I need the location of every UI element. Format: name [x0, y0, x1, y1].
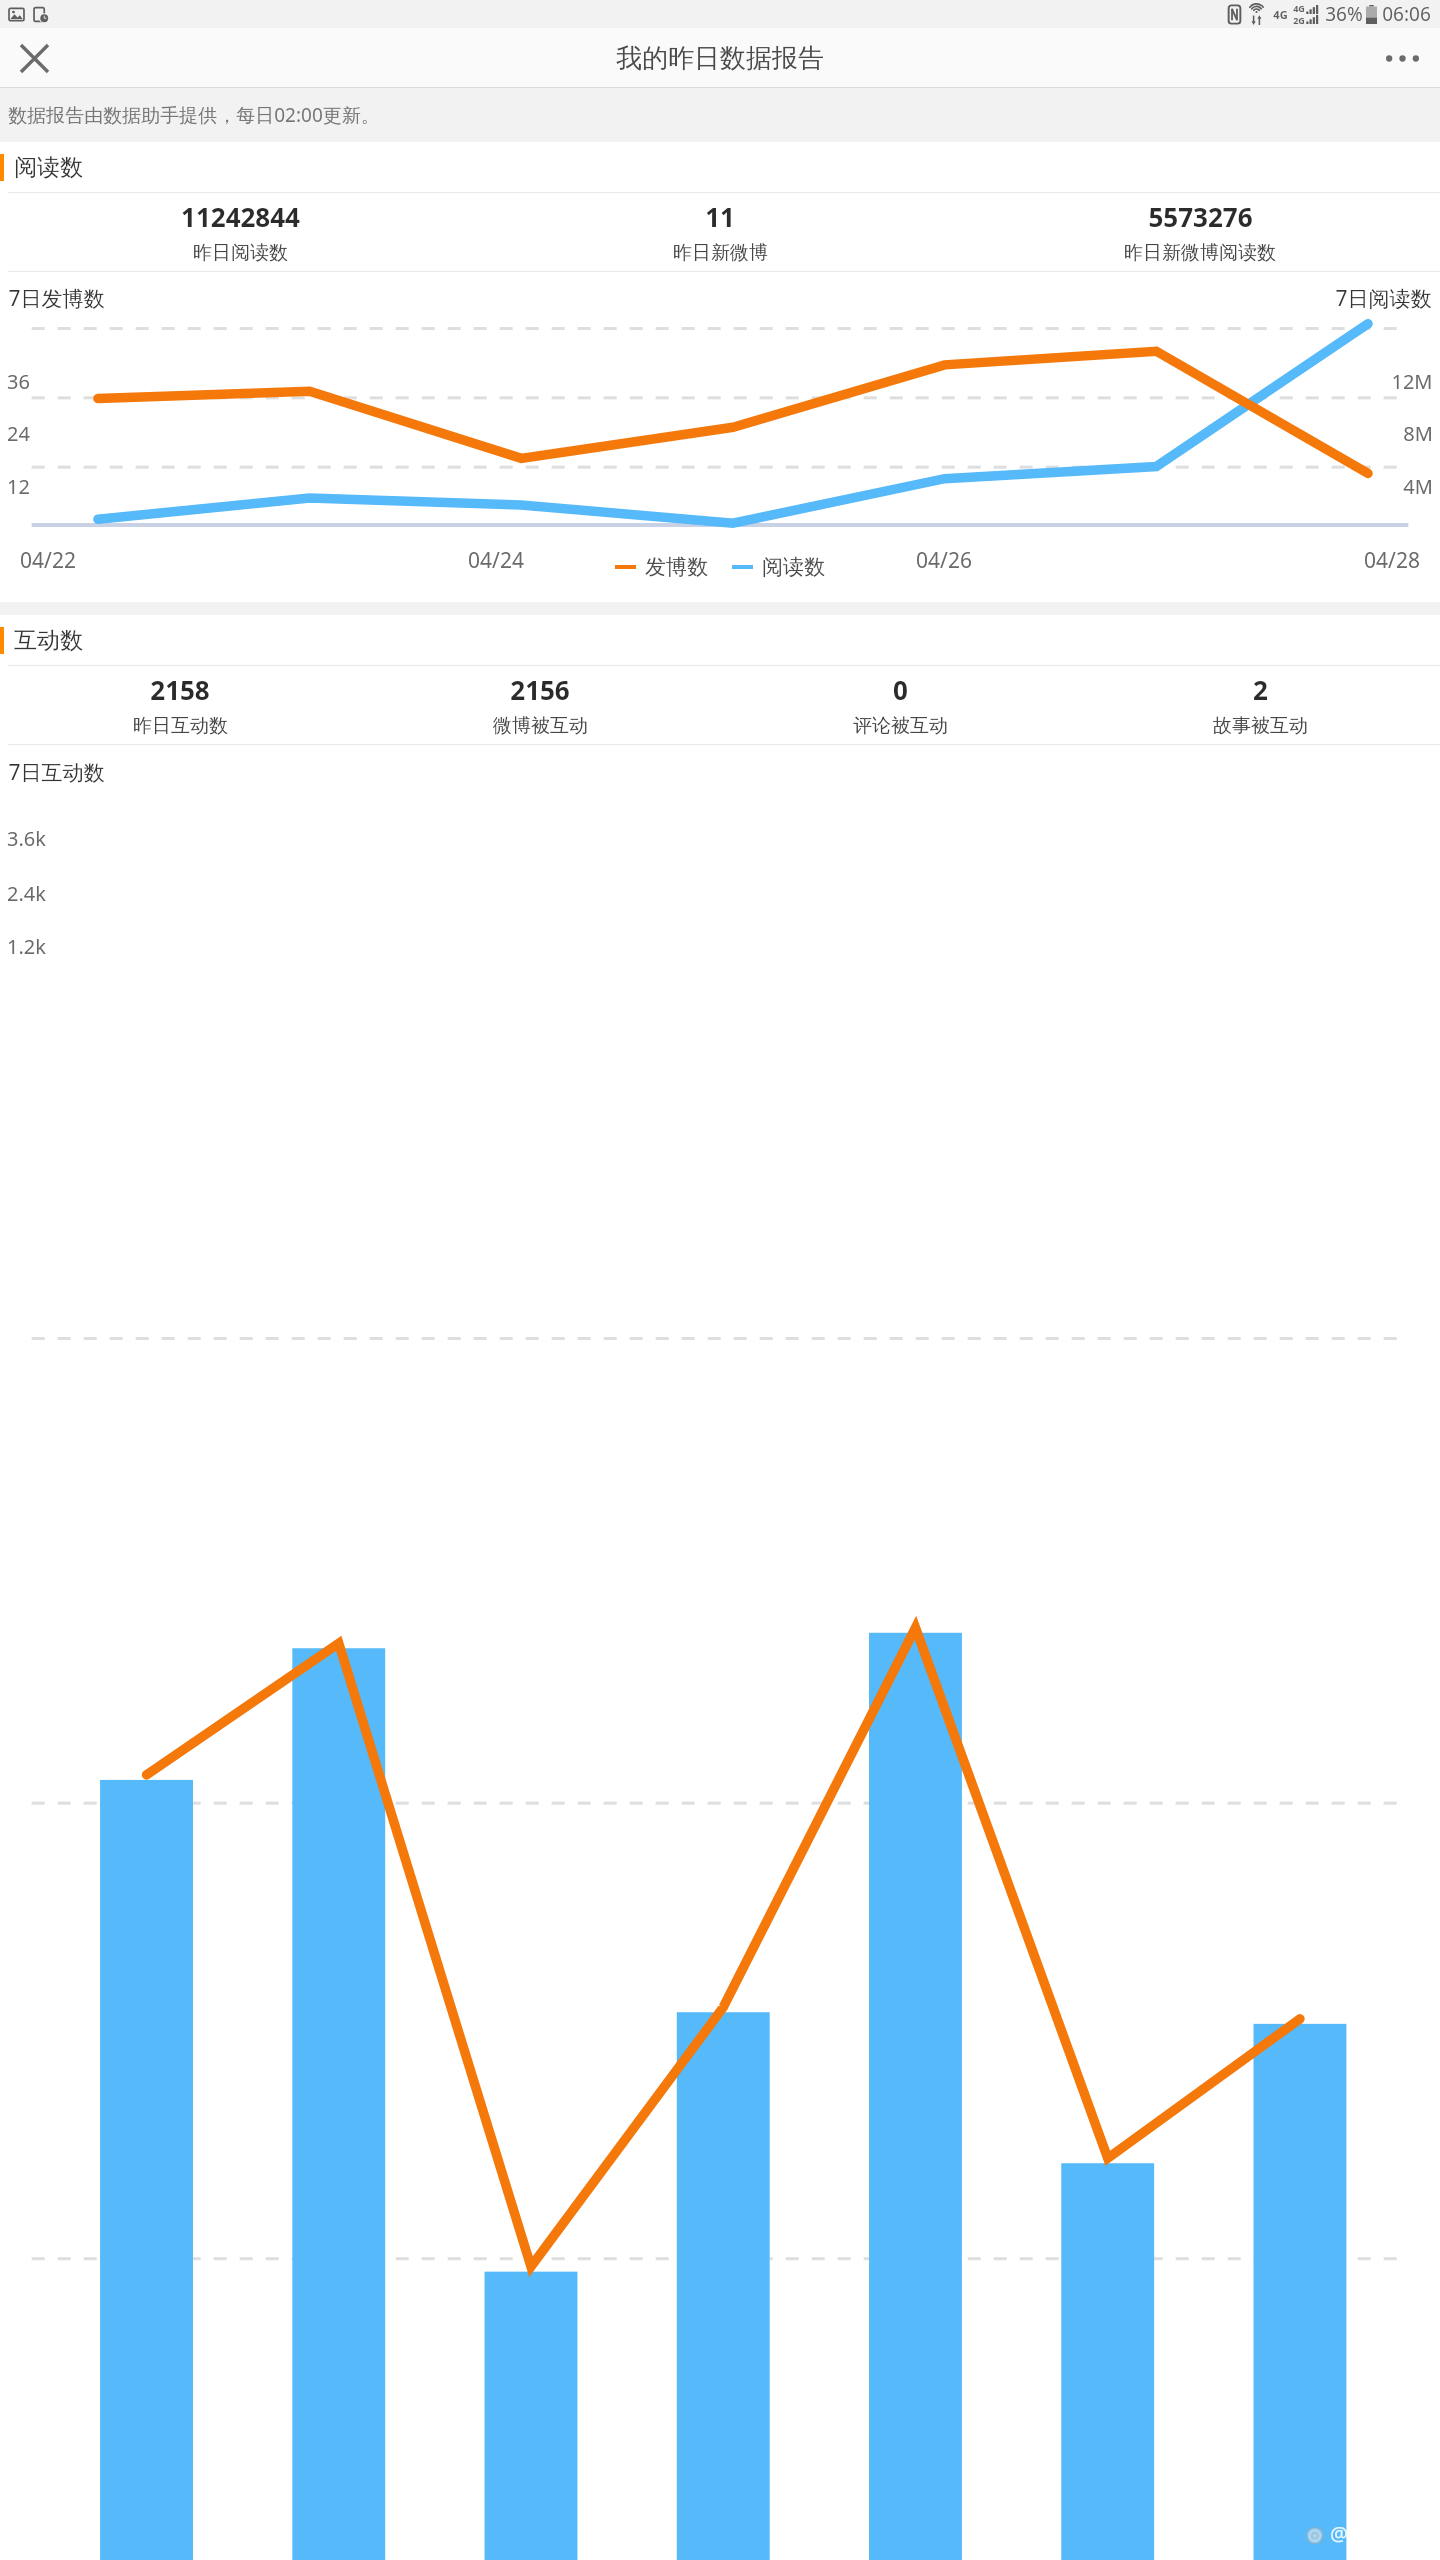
- button[interactable]: 阅读数: [732, 554, 825, 580]
- button[interactable]: Close: [6, 30, 62, 86]
- staticText: 2156: [510, 672, 570, 707]
- staticText: 4M: [1403, 473, 1433, 500]
- staticText: 04/28: [1364, 546, 1420, 575]
- staticText: 微博被互动: [493, 714, 588, 738]
- staticText: 故事被互动: [1213, 714, 1308, 738]
- button[interactable]: 11242844: [0, 193, 480, 271]
- button[interactable]: 2156: [360, 666, 720, 744]
- staticText: 8M: [1403, 420, 1433, 447]
- staticText: 昨日阅读数: [193, 241, 288, 265]
- staticText: 04/22: [20, 546, 76, 575]
- button[interactable]: 发博数: [615, 554, 708, 580]
- staticText: 阅读数: [14, 153, 83, 182]
- staticText: 阅读数: [762, 554, 825, 580]
- staticText: 24: [7, 420, 30, 447]
- staticText: 7日互动数: [8, 758, 105, 787]
- staticText: 12: [7, 473, 30, 500]
- staticText: 评论被互动: [853, 714, 948, 738]
- button[interactable]: 0: [720, 666, 1080, 744]
- staticText: 2G: [1293, 14, 1305, 26]
- staticText: 我的昨日数据报告: [616, 42, 824, 75]
- staticText: 06:06: [1382, 1, 1431, 27]
- button[interactable]: 2158: [0, 666, 360, 744]
- button[interactable]: 11: [480, 193, 960, 271]
- staticText: 1.2k: [7, 933, 46, 960]
- button[interactable]: 5573276: [960, 193, 1440, 271]
- staticText: 互动数: [14, 626, 83, 655]
- staticText: 7日发博数: [8, 284, 105, 313]
- staticText: 2.4k: [7, 880, 46, 907]
- staticText: 4G: [1273, 7, 1288, 22]
- staticText: 36: [7, 368, 30, 395]
- staticText: 0: [893, 672, 908, 707]
- staticText: 数据报告由数据助手提供，每日02:00更新。: [8, 102, 380, 128]
- staticText: 04/26: [916, 546, 972, 575]
- button[interactable]: 2: [1080, 666, 1440, 744]
- staticText: 3.6k: [7, 825, 46, 852]
- button[interactable]: More options: [1374, 30, 1430, 86]
- staticText: 11242844: [181, 199, 300, 234]
- staticText: 昨日互动数: [133, 714, 228, 738]
- staticText: 昨日新微博阅读数: [1124, 241, 1276, 265]
- staticText: 5573276: [1148, 199, 1253, 234]
- staticText: 04/24: [468, 546, 524, 575]
- staticText: 2158: [150, 672, 210, 707]
- staticText: 2: [1253, 672, 1268, 707]
- staticText: @创新二哥: [1330, 2520, 1428, 2547]
- staticText: 12M: [1391, 368, 1433, 395]
- staticText: 11: [705, 199, 735, 234]
- staticText: 36%: [1325, 1, 1363, 27]
- staticText: 7日阅读数: [1335, 284, 1432, 313]
- staticText: 4G: [1293, 2, 1305, 14]
- staticText: 昨日新微博: [673, 241, 768, 265]
- staticText: 发博数: [645, 554, 708, 580]
